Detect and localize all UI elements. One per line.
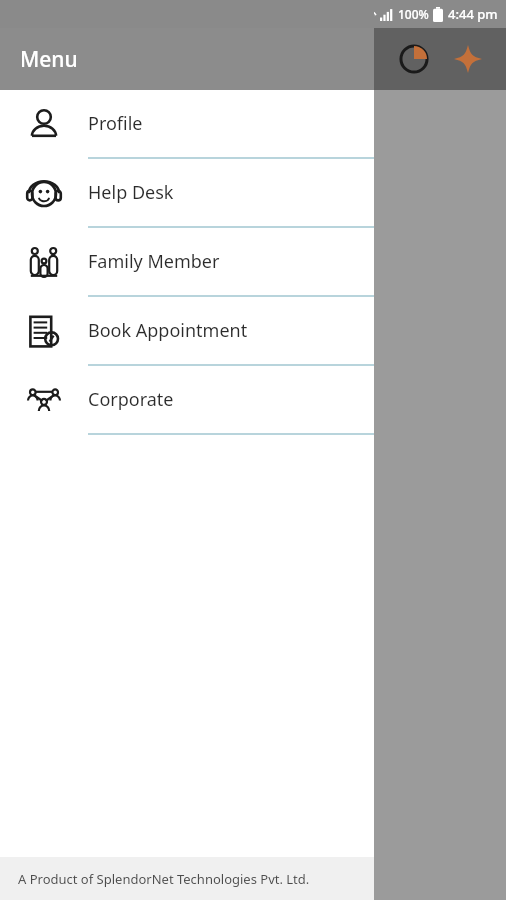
staticText: Profile xyxy=(88,111,143,136)
staticText: Book Appointment xyxy=(330,250,440,281)
staticText: Book Appointment xyxy=(88,318,248,343)
button[interactable]: Corporate xyxy=(0,366,374,435)
staticText: A Product of SplendorNet Technologies Pv… xyxy=(18,870,310,888)
button[interactable]: Help Desk xyxy=(0,159,374,228)
button[interactable]: Sparkle xyxy=(444,35,492,83)
staticText: 4:44 pm xyxy=(448,5,498,23)
button[interactable]: Family Member xyxy=(0,228,374,297)
button[interactable]: Book Appointment xyxy=(0,297,374,366)
staticText: Health Provider xyxy=(330,450,440,481)
staticText: Family Member xyxy=(88,249,220,274)
staticText: Menu xyxy=(20,45,78,74)
staticText: Corporate xyxy=(88,387,174,412)
staticText: 100% xyxy=(398,6,429,22)
button[interactable]: Profile xyxy=(0,90,374,159)
staticText: Help Desk xyxy=(88,180,174,205)
button[interactable]: Activity xyxy=(390,35,438,83)
